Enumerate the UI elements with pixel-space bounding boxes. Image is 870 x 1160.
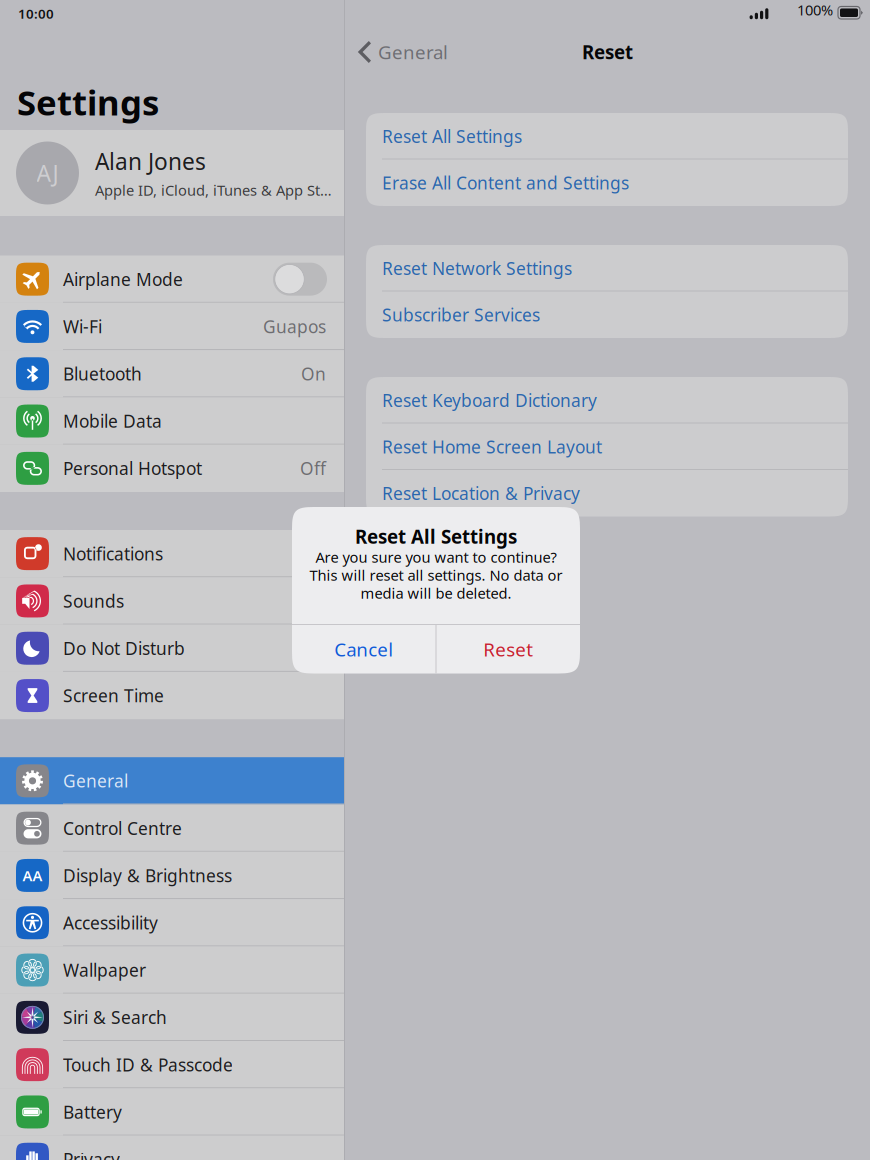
staticText: 10:00 <box>18 5 54 22</box>
staticText: Personal Hotspot <box>63 457 202 480</box>
button[interactable]: Wi-Fi <box>0 303 344 350</box>
staticText: Wi-Fi <box>63 315 102 338</box>
button[interactable]: Sounds <box>0 577 344 625</box>
staticText: media will be deleted. <box>360 583 511 603</box>
button[interactable]: Reset Network Settings <box>366 245 848 291</box>
staticText: Notifications <box>63 542 163 565</box>
staticText: Reset All Settings <box>382 125 522 148</box>
staticText: Reset <box>483 637 533 662</box>
button[interactable]: Personal Hotspot <box>0 445 344 492</box>
button[interactable]: General <box>345 27 458 77</box>
staticText: Accessibility <box>63 911 158 934</box>
button[interactable]: AJ <box>0 130 344 216</box>
button[interactable]: Bluetooth <box>0 350 344 397</box>
button[interactable]: Mobile Data <box>0 397 344 445</box>
button[interactable]: Reset All Settings <box>366 113 848 159</box>
button[interactable]: Reset Home Screen Layout <box>366 423 848 470</box>
button[interactable]: Erase All Content and Settings <box>366 159 848 206</box>
button[interactable]: Accessibility <box>0 899 344 946</box>
staticText: Display & Brightness <box>63 864 232 887</box>
button[interactable]: Siri & Search <box>0 994 344 1041</box>
button[interactable]: General <box>0 757 344 804</box>
staticText: Battery <box>63 1100 122 1123</box>
staticText: Touch ID & Passcode <box>63 1053 233 1076</box>
staticText: Apple ID, iCloud, iTunes & App St… <box>95 180 332 200</box>
staticText: Guapos <box>263 315 326 338</box>
staticText: Mobile Data <box>63 409 162 432</box>
button[interactable]: Battery <box>0 1088 344 1136</box>
staticText: Bluetooth <box>63 362 142 385</box>
staticText: AJ <box>36 158 58 188</box>
staticText: Subscriber Services <box>382 303 540 326</box>
button[interactable]: Touch ID & Passcode <box>0 1041 344 1088</box>
button[interactable]: Wallpaper <box>0 946 344 994</box>
button[interactable]: Airplane Mode <box>0 255 344 303</box>
button[interactable]: Control Centre <box>0 804 344 852</box>
button[interactable]: Reset Keyboard Dictionary <box>366 377 848 423</box>
staticText: This will reset all settings. No data or <box>309 565 562 585</box>
button[interactable]: Reset <box>436 625 580 673</box>
staticText: Reset Network Settings <box>382 257 572 280</box>
button[interactable]: Reset Location & Privacy <box>366 470 848 516</box>
button[interactable]: Notifications <box>0 530 344 577</box>
staticText: General <box>378 40 448 64</box>
staticText: General <box>63 769 128 792</box>
staticText: Siri & Search <box>63 1006 167 1029</box>
staticText: Are you sure you want to continue? <box>315 547 556 567</box>
staticText: Alan Jones <box>95 146 206 176</box>
button[interactable]: Subscriber Services <box>366 291 848 338</box>
staticText: Reset Location & Privacy <box>382 482 580 505</box>
staticText: Do Not Disturb <box>63 637 185 660</box>
staticText: Privacy <box>63 1148 120 1160</box>
staticText: Wallpaper <box>63 958 146 981</box>
staticText: On <box>301 362 326 385</box>
staticText: Settings <box>17 79 159 125</box>
staticText: 100% <box>797 0 833 19</box>
staticText: Reset Home Screen Layout <box>382 435 602 458</box>
staticText: Control Centre <box>63 817 182 840</box>
staticText: Reset All Settings <box>355 524 517 549</box>
staticText: Reset Keyboard Dictionary <box>382 389 597 412</box>
staticText: Sounds <box>63 589 124 612</box>
staticText: Screen Time <box>63 684 164 707</box>
button[interactable]: Privacy <box>0 1136 344 1160</box>
button[interactable]: Do Not Disturb <box>0 625 344 672</box>
staticText: Reset <box>582 40 633 64</box>
button[interactable]: Cancel <box>292 625 435 673</box>
staticText: Off <box>300 457 326 480</box>
staticText: Erase All Content and Settings <box>382 171 629 194</box>
staticText: AA <box>22 866 42 885</box>
staticText: Airplane Mode <box>63 268 183 291</box>
staticText: Cancel <box>334 637 393 662</box>
button[interactable]: AA <box>0 852 344 899</box>
button[interactable]: Screen Time <box>0 672 344 719</box>
